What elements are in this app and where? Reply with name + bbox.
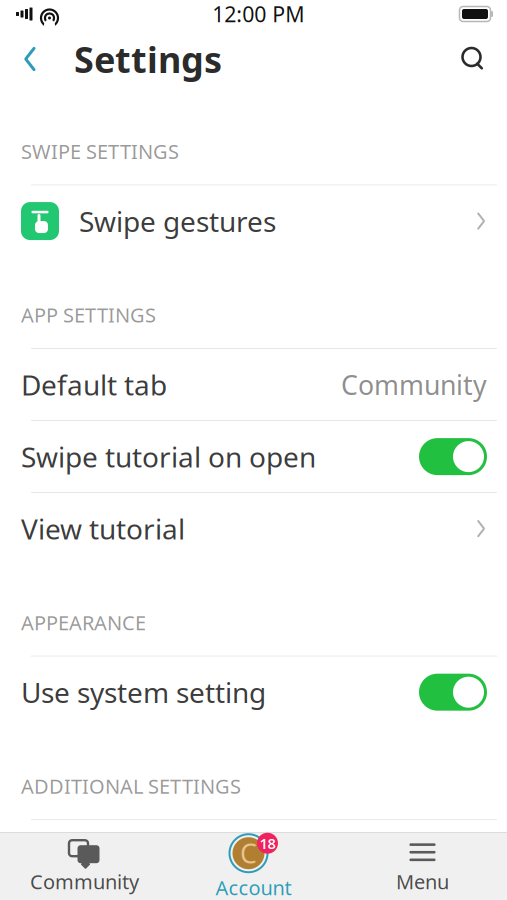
staticText: Community: [341, 367, 487, 402]
button[interactable]: Swipe tutorial on open: [0, 421, 507, 492]
button[interactable]: Swipe gestures: [0, 186, 507, 257]
staticText: SWIPE SETTINGS: [21, 138, 179, 165]
staticText: Account: [215, 874, 291, 900]
staticText: Menu: [396, 868, 449, 895]
staticText: Swipe gestures: [79, 202, 276, 240]
button[interactable]: Default tab: [0, 349, 507, 420]
button[interactable]: Menu: [338, 832, 507, 900]
staticText: View tutorial: [21, 510, 185, 547]
button[interactable]: View tutorial: [0, 493, 507, 564]
staticText: Swipe tutorial on open: [21, 438, 316, 475]
button[interactable]: Search: [451, 37, 495, 81]
staticText: 12:00 PM: [212, 0, 304, 28]
staticText: Community: [30, 868, 139, 895]
staticText: APPEARANCE: [21, 609, 146, 636]
button[interactable]: Back: [8, 37, 52, 81]
staticText: Use system setting: [21, 674, 266, 711]
button[interactable]: Account details: [0, 820, 507, 891]
staticText: APP SETTINGS: [21, 302, 156, 328]
staticText: Default tab: [21, 366, 167, 403]
staticText: Account details: [21, 837, 219, 874]
staticText: C: [240, 835, 257, 871]
staticText: Settings: [74, 35, 222, 83]
button[interactable]: Use system setting: [0, 657, 507, 728]
button[interactable]: Community: [0, 832, 169, 900]
button[interactable]: C: [169, 832, 338, 900]
staticText: 18: [259, 833, 275, 853]
staticText: ADDITIONAL SETTINGS: [21, 773, 241, 799]
